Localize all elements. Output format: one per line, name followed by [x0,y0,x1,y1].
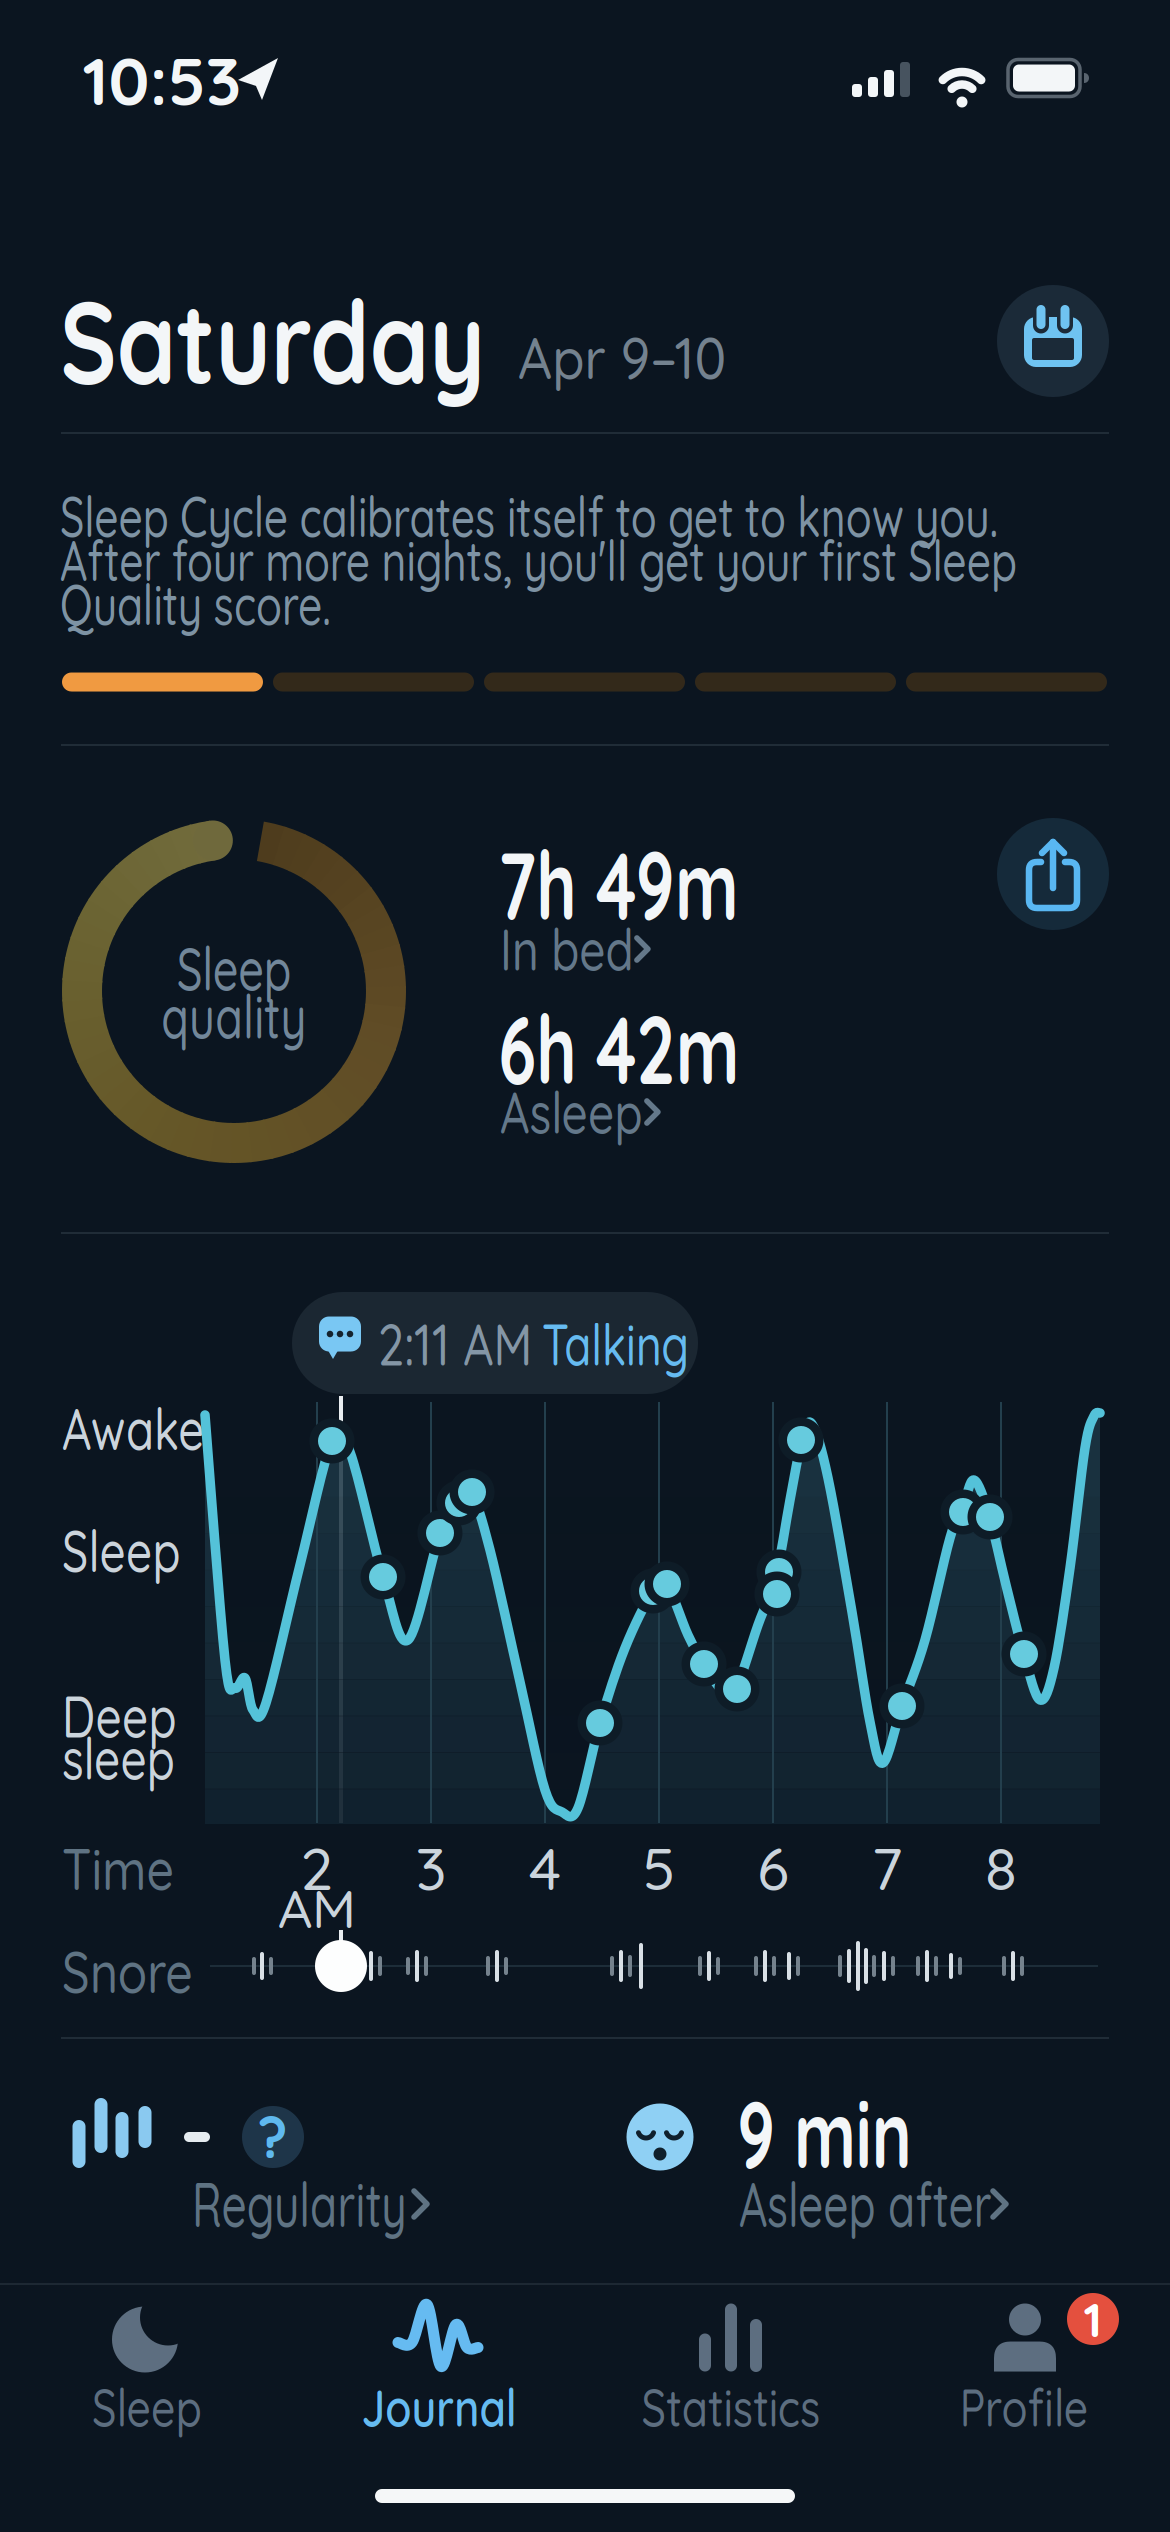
staticText: 5 [642,1831,675,1905]
button[interactable]: Statistics [611,2306,851,2436]
staticText: Awake [62,1391,245,1465]
staticText: 3 [415,1831,446,1905]
staticText: 9 min [737,2075,980,2191]
staticText: In bed [500,913,667,985]
staticText: Asleep after [739,2166,1090,2242]
button[interactable]: 2:11 AM [292,1292,698,1394]
staticText: sleep [62,1722,203,1794]
staticText: 4 [529,1831,561,1905]
button[interactable]: ? [242,2106,304,2168]
staticText: Sleep Cycle calibrates itself to get to … [60,481,1170,551]
button[interactable]: Sleep [27,2306,267,2436]
staticText: Journal [344,2374,533,2439]
staticText: 6h 42m [498,988,834,1108]
staticText: 10:53 [82,38,241,122]
staticText: 2:11 AM [378,1308,566,1380]
staticText: Sleep [62,1513,214,1587]
staticText: 2 [300,1831,333,1905]
staticText: ? [258,2102,288,2172]
staticText: Time [62,1831,199,1905]
staticText: Quality score. [60,569,416,639]
staticText: Deep [62,1680,205,1752]
button[interactable] [997,818,1109,930]
staticText: Asleep [500,1076,678,1148]
staticText: 7h 49m [498,824,833,944]
staticText: 1 [1083,2289,1102,2349]
staticText: Apr 9–10 [518,320,749,394]
staticText: AM [278,1875,356,1941]
button[interactable]: Journal [319,2306,559,2436]
staticText: 6 [757,1831,789,1905]
staticText: After four more nights, you'll get your … [60,525,1170,595]
staticText: 8 [985,1831,1017,1905]
button[interactable]: Profile [904,2306,1144,2436]
button[interactable] [997,285,1109,397]
staticText: Sleep [80,2374,214,2439]
staticText: quality [137,978,331,1053]
button[interactable]: In bed [498,921,798,977]
staticText: Profile [945,2374,1102,2439]
button[interactable]: Regularity [190,2174,630,2234]
staticText: Talking [542,1308,733,1380]
staticText: Saturday [60,269,572,413]
button[interactable]: Asleep after [737,2174,1170,2234]
staticText: Regularity [192,2166,490,2242]
staticText: Statistics [622,2374,840,2439]
staticText: 7 [871,1831,902,1905]
staticText: Snore [62,1934,222,2008]
button[interactable]: Asleep [498,1084,798,1140]
staticText: Sleep [157,930,310,1005]
